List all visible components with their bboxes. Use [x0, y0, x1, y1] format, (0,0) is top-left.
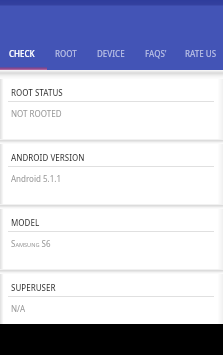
- button[interactable]: SUPERUSER: [0, 274, 223, 334]
- button[interactable]: DEVICE: [88, 44, 133, 63]
- staticText: NOT ROOTED: [11, 108, 62, 119]
- button[interactable]: ANDROID VERSION: [0, 144, 223, 204]
- button[interactable]: MODEL: [0, 209, 223, 269]
- button[interactable]: ROOT STATUS: [0, 79, 223, 139]
- button[interactable]: ROOT: [44, 44, 88, 63]
- staticText: N/A: [11, 303, 26, 314]
- staticText: MODEL: [11, 217, 40, 228]
- staticText: ROOT STATUS: [11, 87, 63, 98]
- button[interactable]: CHECK: [0, 44, 44, 63]
- button[interactable]: RATE US: [178, 44, 223, 63]
- button[interactable]: FAQS': [133, 44, 178, 63]
- staticText: FAQS': [145, 48, 167, 59]
- staticText: SAMSUNG S6: [11, 238, 51, 249]
- staticText: RATE US: [185, 48, 217, 59]
- staticText: ANDROID VERSION: [11, 152, 85, 163]
- staticText: Android 5.1.1: [11, 173, 62, 184]
- staticText: ROOT: [55, 48, 77, 59]
- staticText: SUPERUSER: [11, 282, 56, 293]
- staticText: DEVICE: [97, 48, 125, 59]
- staticText: CHECK: [9, 48, 35, 59]
